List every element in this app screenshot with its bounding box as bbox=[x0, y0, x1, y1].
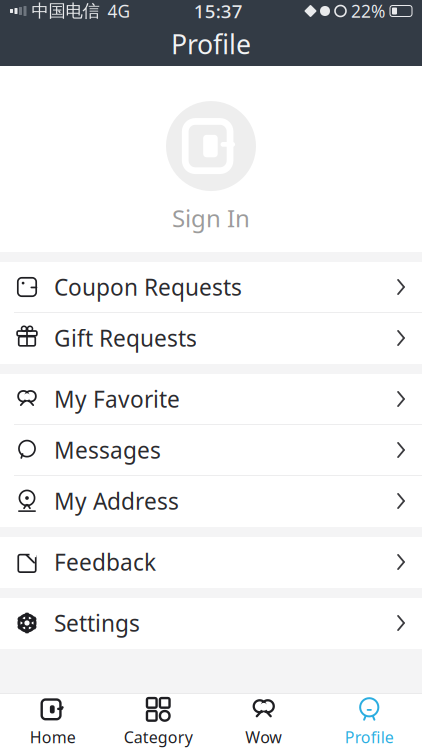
staticText: 中国电信 bbox=[31, 0, 99, 22]
staticText: Gift Requests bbox=[54, 323, 197, 353]
button[interactable]: Feedback bbox=[0, 537, 422, 588]
staticText: 4G bbox=[107, 0, 130, 22]
button[interactable]: Wow bbox=[211, 696, 316, 748]
button[interactable]: Home bbox=[0, 696, 105, 748]
staticText: Home bbox=[30, 726, 76, 748]
button[interactable]: Settings bbox=[0, 598, 422, 649]
staticText: Coupon Requests bbox=[54, 272, 242, 302]
staticText: Wow bbox=[245, 726, 282, 748]
button[interactable]: Gift Requests bbox=[0, 313, 422, 364]
staticText: Profile bbox=[345, 726, 394, 748]
staticText: Settings bbox=[54, 608, 140, 638]
staticText: Sign In bbox=[172, 202, 250, 234]
button[interactable]: My Address bbox=[0, 476, 422, 527]
staticText: 22% bbox=[351, 0, 385, 22]
button[interactable]: Category bbox=[105, 696, 211, 748]
button[interactable]: My Favorite bbox=[0, 374, 422, 425]
staticText: Category bbox=[124, 726, 193, 748]
staticText: Profile bbox=[171, 26, 251, 62]
button[interactable]: Messages bbox=[0, 425, 422, 476]
staticText: My Favorite bbox=[54, 384, 180, 414]
button[interactable]: Coupon Requests bbox=[0, 262, 422, 313]
staticText: 15:37 bbox=[194, 0, 243, 23]
button[interactable]: Sign In bbox=[0, 66, 422, 252]
staticText: My Address bbox=[54, 486, 179, 516]
staticText: Messages bbox=[54, 435, 161, 465]
staticText: Feedback bbox=[54, 547, 156, 577]
button[interactable]: Profile bbox=[316, 696, 422, 748]
